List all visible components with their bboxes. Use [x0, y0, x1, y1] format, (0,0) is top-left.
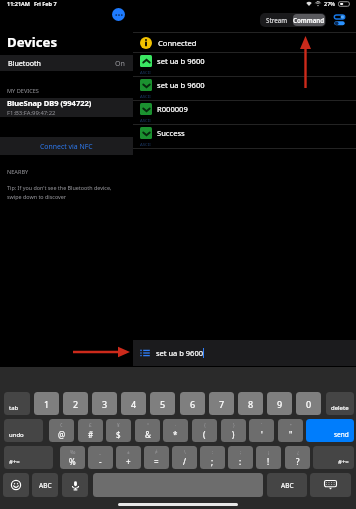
button[interactable]: £	[78, 419, 103, 442]
staticText: Bluetooth	[8, 58, 41, 68]
button[interactable]: ASCII	[133, 77, 356, 100]
staticText: F1:B3:FA:99:47:22	[7, 109, 56, 117]
staticText: =	[154, 456, 159, 467]
button[interactable]: ABC	[32, 473, 58, 497]
button[interactable]: Connected	[133, 33, 356, 52]
staticText: !	[267, 456, 270, 467]
staticText: 1	[44, 398, 50, 410]
button[interactable]: ¢	[49, 419, 74, 442]
button[interactable]: ¥	[106, 419, 131, 442]
button[interactable]: ASCII	[133, 101, 356, 124]
button[interactable]: tab	[4, 392, 30, 415]
button[interactable]: Command	[293, 14, 325, 26]
staticText: ;	[240, 449, 242, 455]
staticText: ABC	[39, 481, 52, 490]
button[interactable]: send	[306, 419, 354, 442]
staticText: MY DEVICES	[7, 87, 39, 95]
button[interactable]: °	[135, 419, 160, 442]
button[interactable]: ¿	[285, 446, 310, 469]
button[interactable]: _	[88, 446, 113, 469]
button[interactable]: ABC	[267, 473, 307, 497]
button[interactable]: ≠	[144, 446, 169, 469]
button[interactable]: }	[221, 419, 246, 442]
button[interactable]: :	[200, 446, 225, 469]
staticText: BlueSnap DB9 (994722)	[7, 98, 92, 108]
staticText: ASCII	[140, 117, 151, 123]
button[interactable]: •	[278, 419, 303, 442]
button[interactable]: ‰	[60, 446, 85, 469]
staticText: Success	[157, 128, 185, 138]
staticText: 7	[219, 398, 225, 410]
button[interactable]: Settings	[332, 13, 346, 27]
button[interactable]: Bluetooth	[0, 55, 133, 71]
staticText: ±	[127, 449, 130, 455]
staticText: 8	[248, 398, 254, 410]
staticText: ABC	[281, 481, 294, 490]
staticText: #+=	[338, 458, 349, 466]
staticText: 9	[277, 398, 283, 410]
button[interactable]: 7	[209, 392, 234, 415]
staticText: tab	[9, 404, 19, 412]
staticText: undo	[9, 431, 24, 439]
staticText: ¢	[60, 422, 63, 428]
button[interactable]: undo	[4, 419, 43, 442]
staticText: Connected	[158, 38, 197, 48]
staticText: :	[212, 449, 214, 455]
button[interactable]: 8	[238, 392, 263, 415]
staticText: •	[290, 422, 292, 428]
button[interactable]: ±	[116, 446, 141, 469]
button[interactable]: Emoji	[3, 473, 29, 497]
button[interactable]: ASCII	[133, 53, 356, 76]
staticText: Devices	[7, 33, 58, 51]
button[interactable]: Stream	[261, 14, 293, 26]
staticText: {	[204, 422, 206, 428]
button[interactable]: ¡	[256, 446, 281, 469]
staticText: On	[115, 58, 125, 68]
staticText: Stream	[266, 16, 288, 24]
button[interactable]: 5	[150, 392, 175, 415]
staticText: ≠	[155, 449, 158, 455]
button[interactable]: BlueSnap DB9 (994722)	[0, 98, 133, 117]
button[interactable]: #+=	[313, 446, 354, 469]
button[interactable]: More options	[112, 8, 125, 21]
button[interactable]: ·	[163, 419, 188, 442]
button[interactable]: 6	[180, 392, 205, 415]
button[interactable]: 0	[296, 392, 321, 415]
button[interactable]: {	[192, 419, 217, 442]
button[interactable]: Hide keyboard	[310, 473, 351, 497]
staticText: -	[99, 456, 102, 467]
staticText: ASCII	[140, 141, 151, 147]
button[interactable]: ASCII	[133, 125, 356, 148]
staticText: ?	[296, 456, 300, 467]
staticText: R000009	[157, 104, 188, 114]
staticText: °	[147, 422, 149, 428]
staticText: Command	[293, 16, 325, 24]
staticText: set ua b 9600	[157, 80, 205, 90]
staticText: "	[289, 429, 293, 440]
button[interactable]: delete	[326, 392, 354, 415]
staticText: +	[126, 456, 131, 467]
staticText: ASCII	[140, 93, 151, 99]
staticText: @	[58, 429, 66, 440]
button[interactable]: Dictate	[62, 473, 88, 497]
staticText: )	[232, 429, 235, 440]
staticText: 0	[306, 398, 312, 410]
button[interactable]: set ua b 9600	[133, 340, 356, 366]
button[interactable]: 2	[63, 392, 88, 415]
button[interactable]: #+=	[4, 446, 53, 469]
button[interactable]: ;	[228, 446, 253, 469]
button[interactable]: \	[172, 446, 197, 469]
button[interactable]: 9	[267, 392, 292, 415]
button[interactable]: Connect via NFC	[0, 137, 133, 155]
button[interactable]: 1	[34, 392, 59, 415]
staticText: 3	[102, 398, 108, 410]
button[interactable]: 3	[92, 392, 117, 415]
staticText: :	[239, 456, 242, 467]
staticText: ;	[211, 456, 214, 467]
staticText: #	[88, 429, 94, 440]
staticText: ·	[175, 422, 177, 428]
button[interactable]: `	[249, 419, 274, 442]
button[interactable]: 4	[121, 392, 146, 415]
staticText: 6	[190, 398, 196, 410]
